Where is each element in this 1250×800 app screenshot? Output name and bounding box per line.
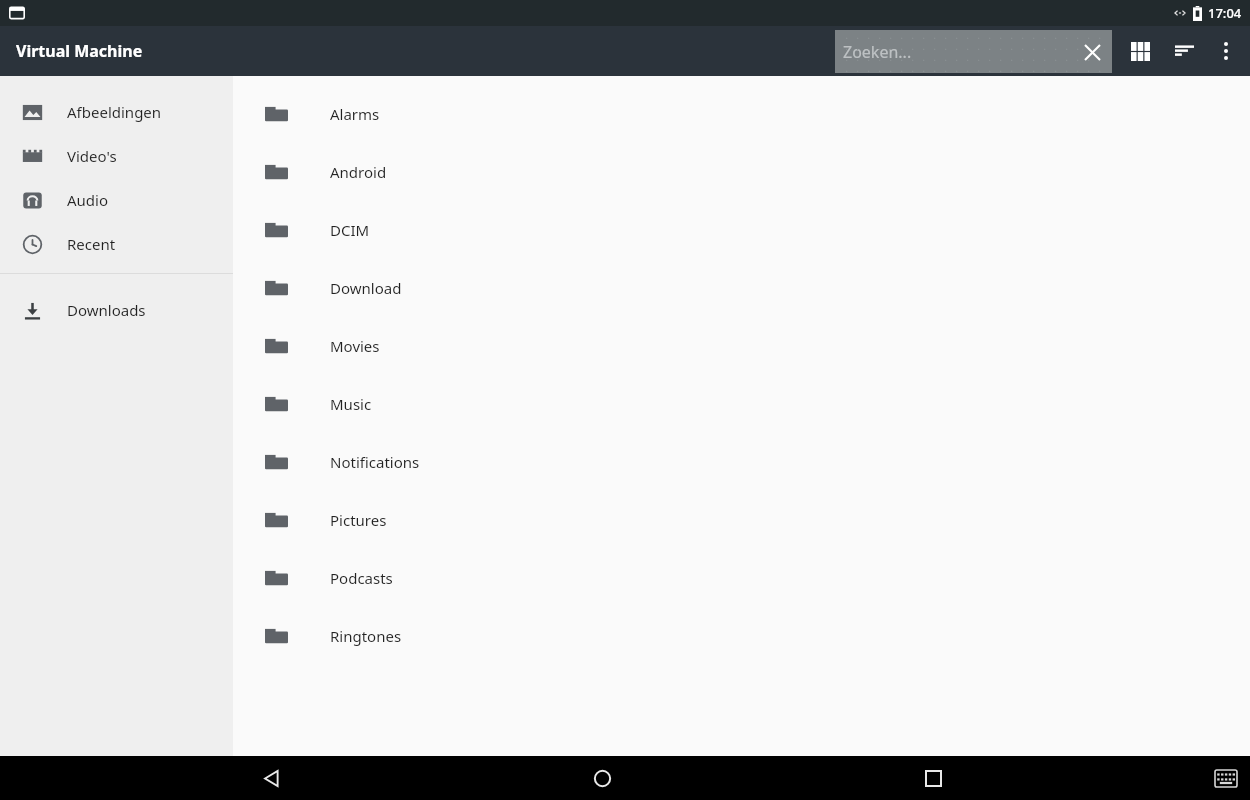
button[interactable]: Clear search: [1072, 32, 1112, 72]
button[interactable]: Pictures: [233, 491, 1250, 549]
button[interactable]: Keyboard: [1204, 756, 1248, 800]
staticText: Downloads: [67, 300, 146, 320]
button[interactable]: Notifications: [233, 433, 1250, 491]
staticText: Download: [330, 278, 402, 298]
button[interactable]: Back: [247, 756, 295, 800]
button[interactable]: Movies: [233, 317, 1250, 375]
button[interactable]: Ringtones: [233, 607, 1250, 665]
staticText: Alarms: [330, 104, 380, 124]
button[interactable]: Grid view: [1118, 29, 1162, 73]
staticText: Android: [330, 162, 387, 182]
button[interactable]: Afbeeldingen: [0, 90, 233, 134]
staticText: Ringtones: [330, 626, 402, 646]
button[interactable]: Download: [233, 259, 1250, 317]
button[interactable]: Recent apps: [909, 756, 957, 800]
button[interactable]: Recent: [0, 222, 233, 266]
staticText: Music: [330, 394, 372, 414]
staticText: 17:04: [1208, 4, 1242, 22]
staticText: Movies: [330, 336, 380, 356]
staticText: Podcasts: [330, 568, 393, 588]
staticText: Video's: [67, 146, 117, 166]
staticText: Recent: [67, 234, 116, 254]
button[interactable]: Sort: [1162, 29, 1206, 73]
staticText: Zoeken...: [843, 41, 912, 63]
button[interactable]: DCIM: [233, 201, 1250, 259]
button[interactable]: Music: [233, 375, 1250, 433]
button[interactable]: Alarms: [233, 85, 1250, 143]
staticText: Virtual Machine: [16, 40, 143, 62]
button[interactable]: Android: [233, 143, 1250, 201]
button[interactable]: Video's: [0, 134, 233, 178]
button[interactable]: Audio: [0, 178, 233, 222]
button[interactable]: Home: [578, 756, 626, 800]
button[interactable]: Downloads: [0, 288, 233, 332]
staticText: Pictures: [330, 510, 387, 530]
button[interactable]: Zoeken...: [835, 30, 1112, 73]
button[interactable]: More options: [1206, 31, 1246, 71]
button[interactable]: Podcasts: [233, 549, 1250, 607]
staticText: Audio: [67, 190, 109, 210]
staticText: Notifications: [330, 452, 420, 472]
staticText: DCIM: [330, 220, 370, 240]
staticText: Afbeeldingen: [67, 102, 162, 122]
